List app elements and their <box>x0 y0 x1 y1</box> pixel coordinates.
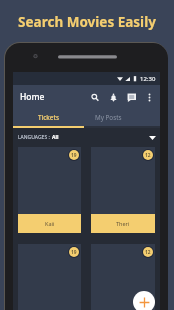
button[interactable]: Add <box>133 291 155 310</box>
button[interactable]: Search <box>86 85 104 109</box>
staticText: 12 <box>145 152 151 159</box>
button[interactable]: 12 <box>91 244 155 310</box>
button[interactable]: Messages <box>122 85 140 109</box>
staticText: All <box>52 134 59 141</box>
staticText: Home <box>20 91 45 103</box>
staticText: My Posts <box>95 113 122 122</box>
staticText: 12:30 <box>140 75 156 83</box>
staticText: Kaii <box>45 220 55 227</box>
button[interactable]: LANGUAGES : <box>13 128 160 147</box>
button[interactable]: Notifications <box>104 85 122 109</box>
staticText: Tickets <box>38 113 59 122</box>
staticText: LANGUAGES : <box>18 134 52 141</box>
staticText: 19 <box>71 152 77 159</box>
staticText: Theri <box>116 220 130 227</box>
button[interactable]: More options <box>140 85 158 109</box>
staticText: 12 <box>145 249 151 256</box>
button[interactable]: 19 <box>18 147 81 233</box>
staticText: 19 <box>71 249 77 256</box>
button[interactable]: My Posts <box>84 109 160 126</box>
button[interactable]: 12 <box>91 147 155 233</box>
button[interactable]: 19 <box>18 244 81 310</box>
button[interactable]: Tickets <box>13 109 84 126</box>
staticText: Search Movies Easily <box>0 13 174 31</box>
